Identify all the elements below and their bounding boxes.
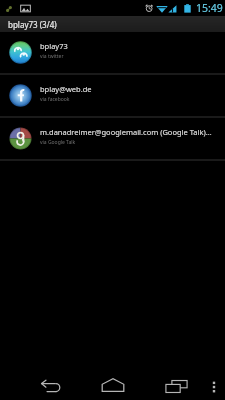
button[interactable]: Back [29,374,72,398]
button[interactable]: bplay@web.de [0,75,225,116]
staticText: bplay@web.de [40,84,92,94]
button[interactable]: More options [205,374,223,398]
button[interactable]: bplay73 [0,32,225,73]
staticText: m.danadreimer@googlemail.com (Google Tal… [40,127,212,137]
button[interactable]: Recent apps [155,374,198,398]
staticText: via twitter [40,53,64,60]
staticText: bplay73 (3/4) [8,19,57,30]
staticText: via facebook [40,96,70,103]
button[interactable]: m.danadreimer@googlemail.com (Google Tal… [0,118,225,159]
button[interactable]: Home [91,373,134,397]
staticText: via Google Talk [40,139,76,146]
staticText: 15:49 [196,1,223,15]
staticText: bplay73 [40,41,68,51]
